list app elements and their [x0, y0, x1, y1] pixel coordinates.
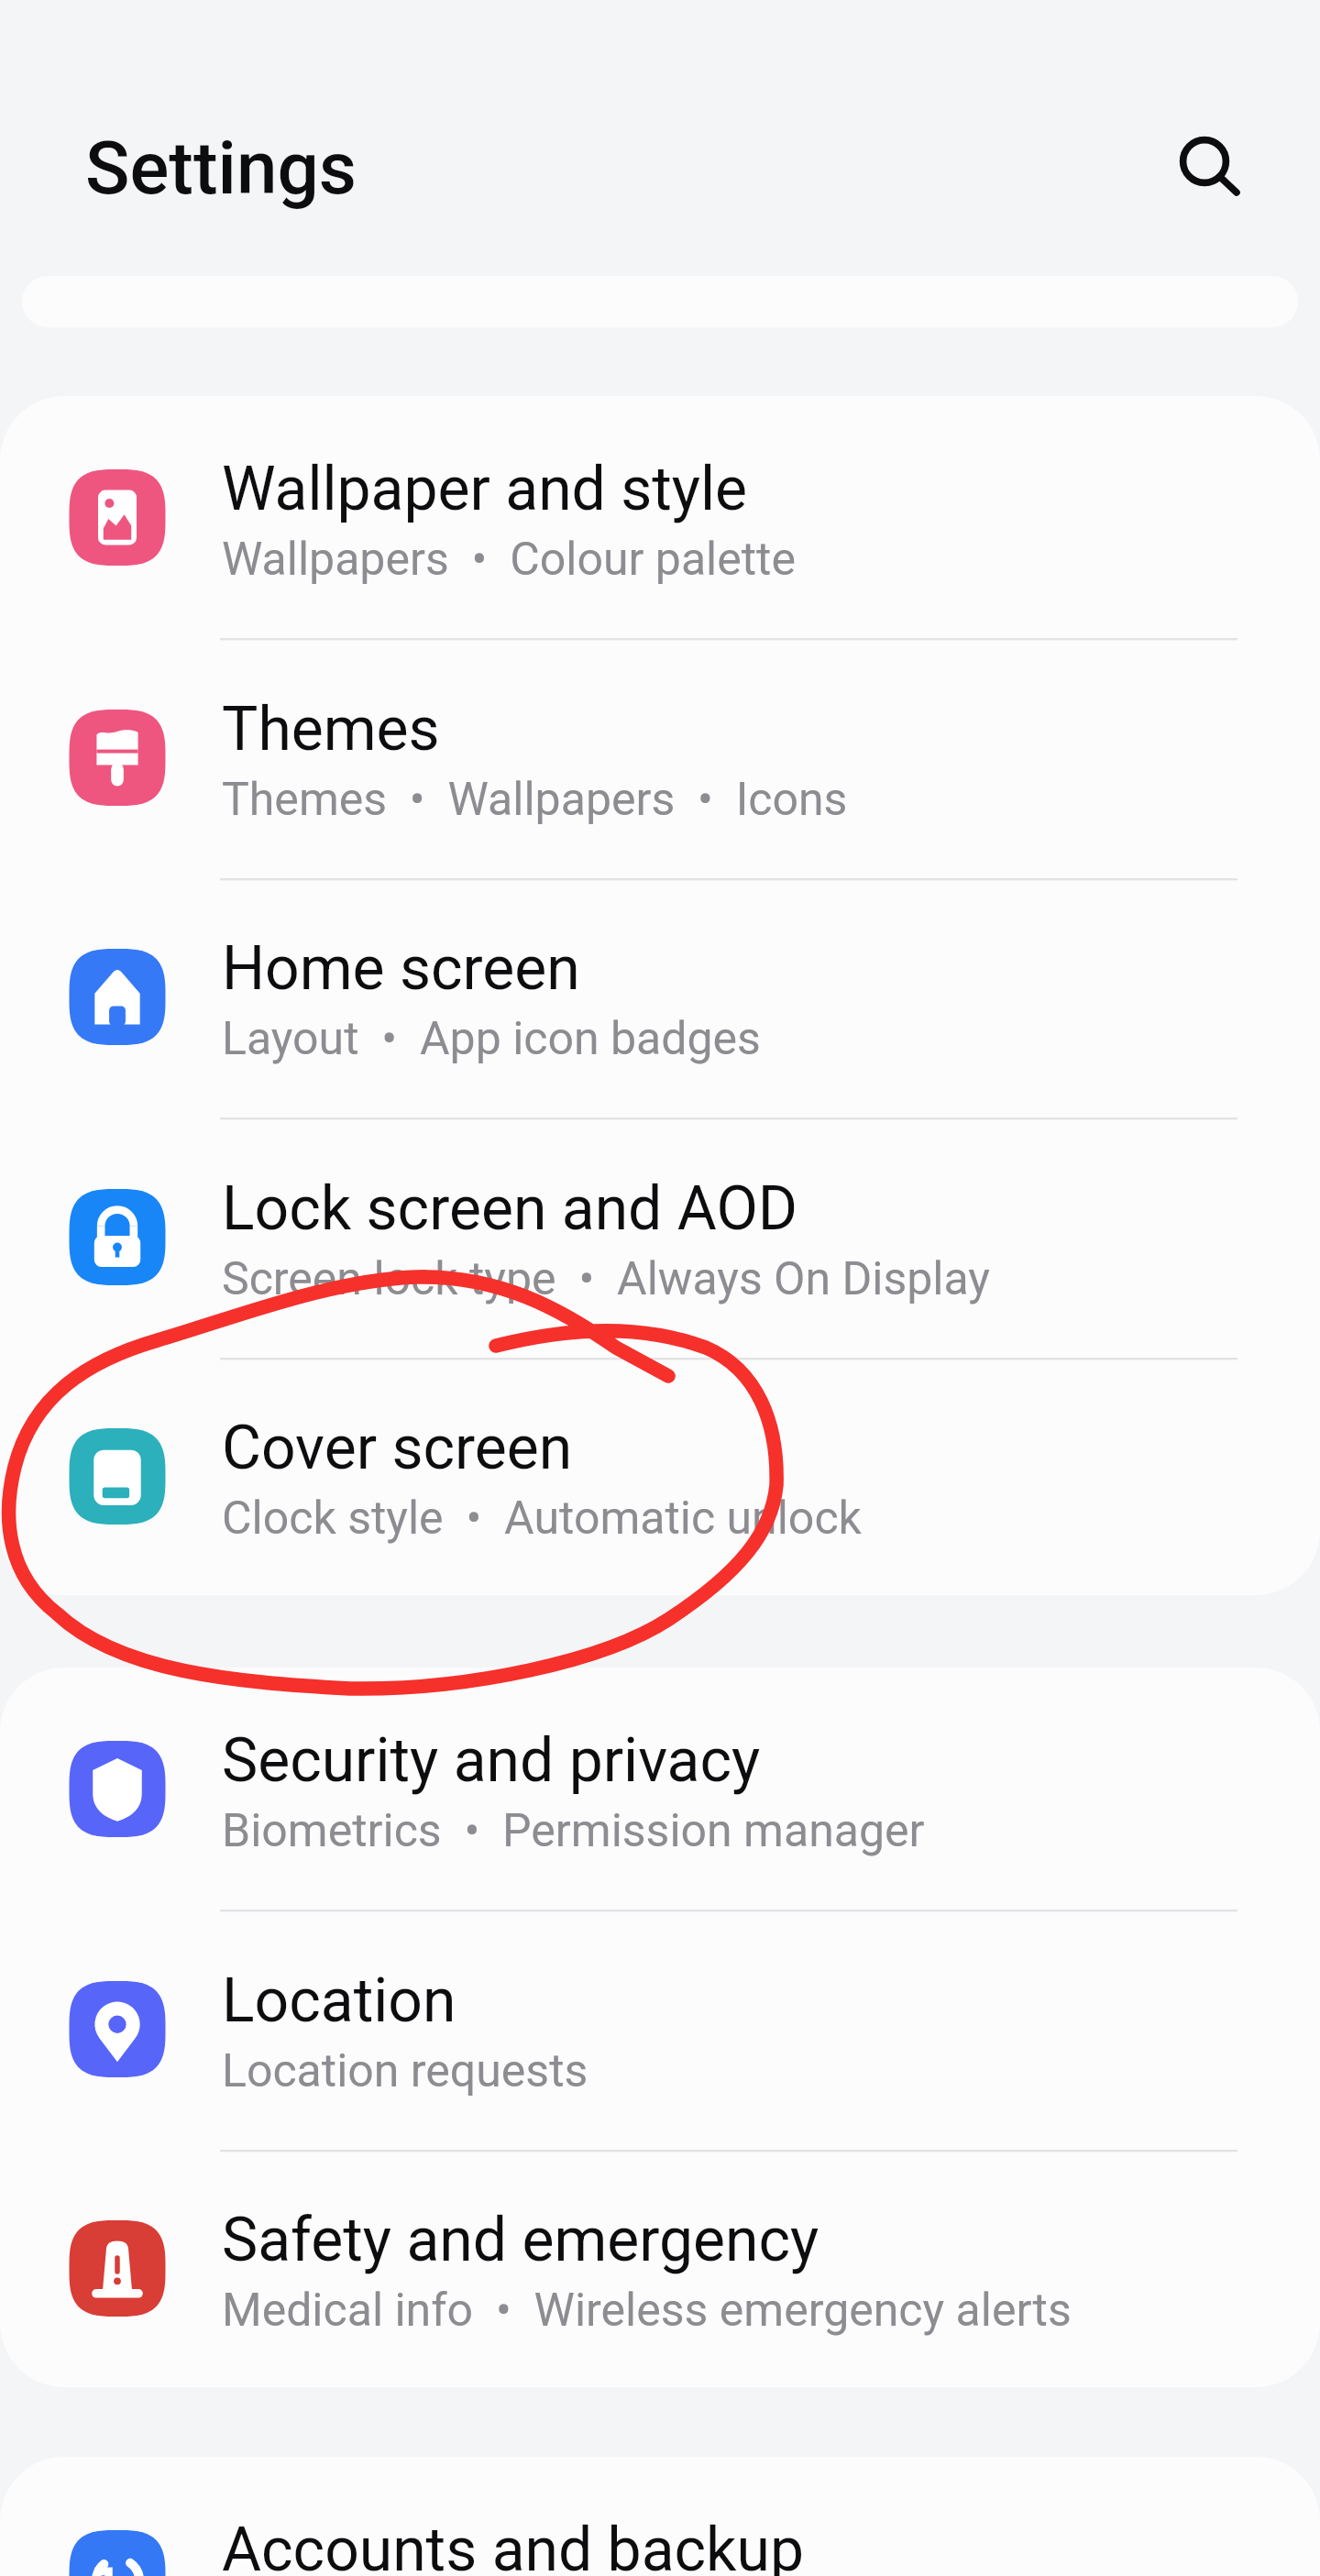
- staticText: Home screen: [222, 933, 580, 1004]
- button[interactable]: Location: [0, 1908, 1320, 2148]
- staticText: Wallpaper and style: [222, 454, 748, 524]
- button[interactable]: Wallpaper and style: [0, 396, 1320, 636]
- staticText: Themes: [222, 694, 440, 765]
- staticText: Location: [222, 1965, 456, 2036]
- button[interactable]: Lock screen and AOD: [0, 1116, 1320, 1356]
- staticText: Safety and emergency: [222, 2205, 819, 2275]
- staticText: Clock style • Automatic unlock: [222, 1492, 862, 1546]
- staticText: Location requests: [222, 2044, 588, 2098]
- staticText: Layout • App icon badges: [222, 1012, 761, 1066]
- button[interactable]: Themes: [0, 636, 1320, 876]
- staticText: Security and privacy: [222, 1725, 761, 1796]
- staticText: Settings: [85, 126, 357, 212]
- staticText: Medical info • Wireless emergency alerts: [222, 2284, 1072, 2338]
- button[interactable]: Home screen: [0, 875, 1320, 1116]
- staticText: Cover screen: [222, 1413, 573, 1483]
- staticText: Screen lock type • Always On Display: [222, 1252, 991, 1306]
- button[interactable]: Cover screen: [0, 1355, 1320, 1595]
- button[interactable]: Accounts and backup: [0, 2457, 1320, 2576]
- button[interactable]: Security and privacy: [0, 1668, 1320, 1908]
- staticText: Accounts and backup: [222, 2515, 804, 2576]
- staticText: Wallpapers • Colour palette: [222, 533, 796, 587]
- button[interactable]: Search: [1149, 106, 1259, 216]
- button[interactable]: Safety and emergency: [0, 2147, 1320, 2387]
- staticText: Lock screen and AOD: [222, 1173, 798, 1244]
- staticText: Themes • Wallpapers • Icons: [222, 773, 848, 827]
- staticText: Biometrics • Permission manager: [222, 1804, 925, 1858]
